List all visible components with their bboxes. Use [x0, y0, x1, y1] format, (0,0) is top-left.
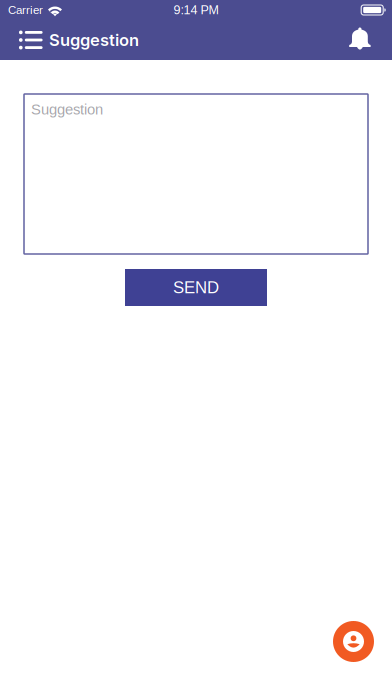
button[interactable]: Notifications [337, 20, 392, 60]
staticText: 9:14 PM [173, 3, 218, 17]
button[interactable]: SEND [125, 269, 267, 306]
staticText: Carrier [8, 4, 43, 16]
button[interactable]: Menu [0, 20, 49, 60]
button[interactable]: Profile [333, 621, 374, 662]
staticText: Suggestion [31, 101, 103, 117]
staticText: SEND [173, 278, 219, 297]
staticText: Suggestion [49, 30, 139, 50]
